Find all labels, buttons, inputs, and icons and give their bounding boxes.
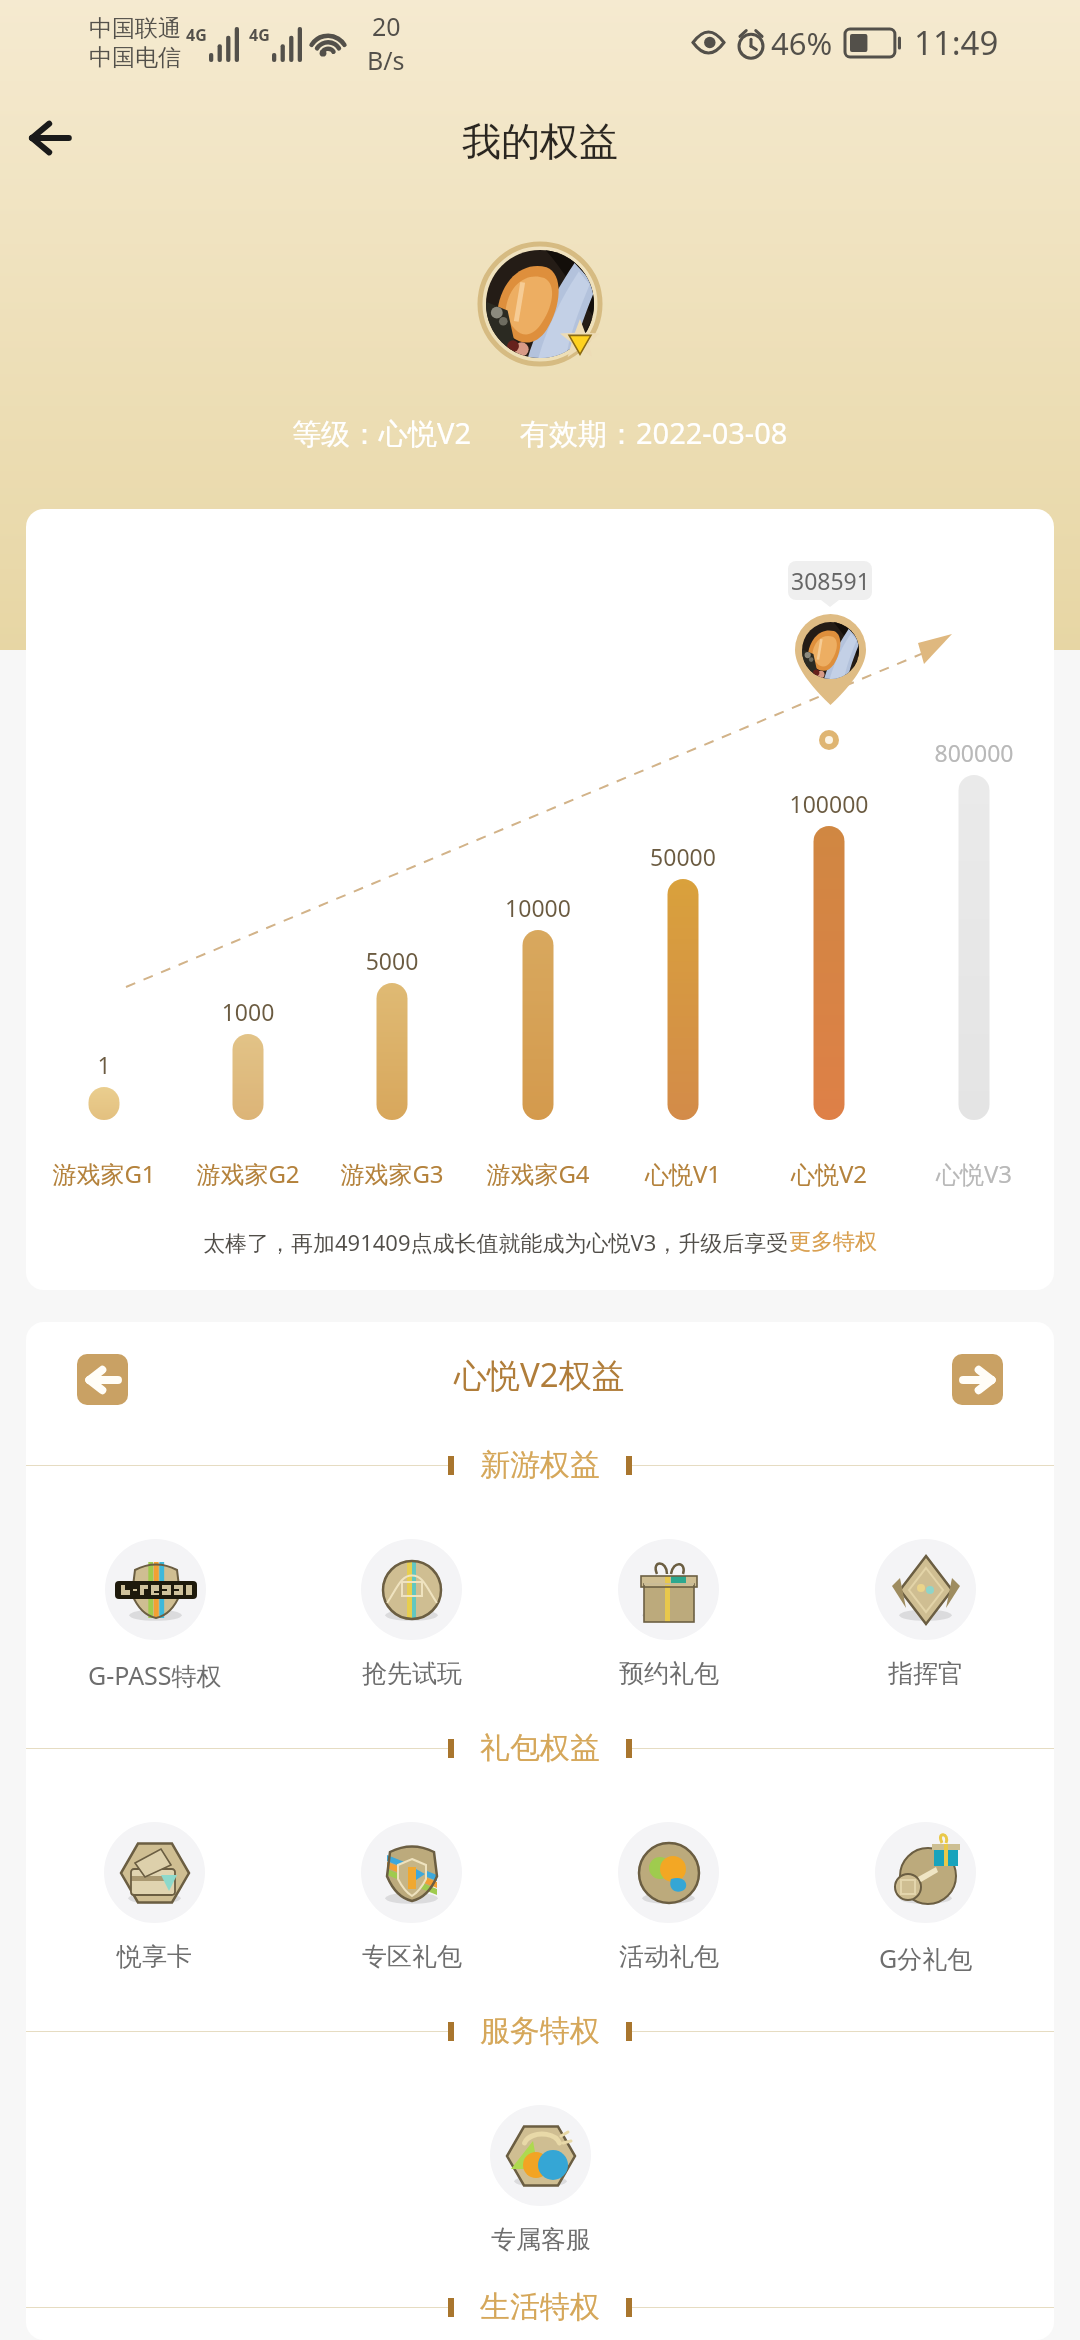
staticText: 10000 (438, 892, 638, 923)
button[interactable]: 抢先试玩 (283, 1487, 540, 1726)
staticText: 4G (249, 24, 270, 46)
staticText: 等级：心悦V2 (292, 413, 471, 453)
button[interactable]: 悦享卡 (26, 1770, 283, 2009)
staticText: 游戏家G2 (148, 1157, 348, 1190)
staticText: 生活特权 (480, 2288, 600, 2326)
staticText: B/s (367, 43, 405, 77)
staticText: 抢先试玩 (362, 1658, 462, 1689)
button[interactable]: 专属客服 (26, 2053, 1054, 2285)
button[interactable]: 专区礼包 (283, 1770, 540, 2009)
staticText: 游戏家G4 (438, 1157, 638, 1190)
staticText: G-PASS特权 (88, 1658, 222, 1692)
staticText: 50000 (583, 841, 783, 872)
staticText: 心悦V1 (583, 1157, 783, 1190)
staticText: 5000 (292, 945, 492, 976)
staticText: G分礼包 (879, 1941, 973, 1975)
staticText: 心悦V3 (874, 1157, 1054, 1190)
staticText: 太棒了，再加491409点成长值就能成为心悦V3，升级后享受 (203, 1227, 789, 1257)
button[interactable]: 活动礼包 (540, 1770, 797, 2009)
staticText: 新游权益 (480, 1446, 600, 1484)
staticText: 更多特权 (789, 1228, 877, 1256)
staticText: 礼包权益 (480, 1729, 600, 1767)
staticText: 中国联通 (89, 14, 181, 43)
staticText: 专属客服 (491, 2224, 591, 2255)
staticText: 308591 (791, 565, 870, 596)
button[interactable]: User avatar (477, 241, 603, 367)
button[interactable]: Back (7, 95, 93, 181)
staticText: 有效期：2022-03-08 (520, 413, 788, 453)
staticText: 预约礼包 (619, 1658, 719, 1689)
staticText: 游戏家G3 (292, 1157, 492, 1190)
staticText: 活动礼包 (619, 1941, 719, 1972)
staticText: 专区礼包 (362, 1941, 462, 1972)
button[interactable]: Previous level (77, 1354, 128, 1405)
button[interactable]: G分礼包 (797, 1770, 1054, 2009)
staticText: 指挥官 (888, 1658, 963, 1689)
button[interactable]: 更多特权 (789, 1228, 877, 1256)
staticText: 1 (26, 1049, 204, 1080)
staticText: 我的权益 (462, 117, 618, 166)
staticText: 悦享卡 (117, 1941, 192, 1972)
staticText: 20 (372, 9, 401, 43)
button[interactable]: 预约礼包 (540, 1487, 797, 1726)
staticText: 服务特权 (480, 2012, 600, 2050)
staticText: 800000 (874, 737, 1054, 768)
button[interactable]: 指挥官 (797, 1487, 1054, 1726)
staticText: 中国电信 (89, 43, 181, 72)
staticText: 游戏家G1 (26, 1157, 204, 1190)
button[interactable]: G-PASS特权 (26, 1487, 283, 1726)
staticText: 心悦V2 (729, 1157, 929, 1190)
staticText: 100000 (729, 788, 929, 819)
button[interactable]: Next level (952, 1354, 1003, 1405)
staticText: 11:49 (914, 20, 999, 65)
staticText: 4G (186, 24, 207, 46)
staticText: 46% (771, 22, 833, 64)
staticText: 1000 (148, 996, 348, 1027)
staticText: 心悦V2权益 (454, 1352, 625, 1397)
